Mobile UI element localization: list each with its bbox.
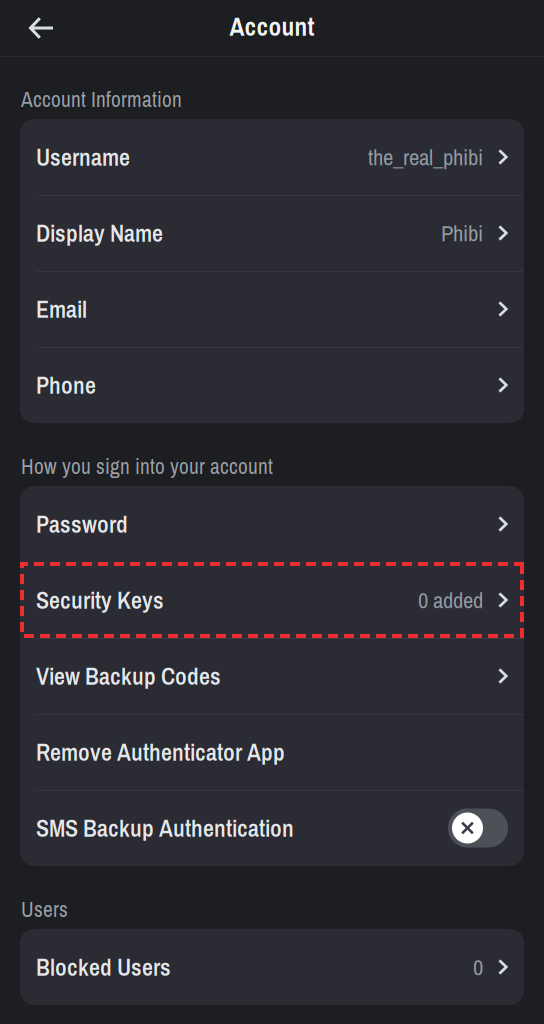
button[interactable]: Display Name <box>20 195 524 271</box>
staticText: Users <box>21 895 68 924</box>
button[interactable]: Security Keys <box>20 562 524 638</box>
button[interactable]: SMS Backup Authentication <box>20 790 524 866</box>
button[interactable]: Remove Authenticator App <box>20 714 524 790</box>
button[interactable]: View Backup Codes <box>20 638 524 714</box>
staticText: Email <box>36 293 87 325</box>
staticText: SMS Backup Authentication <box>36 812 294 844</box>
staticText: Phibi <box>441 218 483 248</box>
button[interactable]: Phone <box>20 347 524 423</box>
button[interactable]: Username <box>20 119 524 195</box>
staticText: Password <box>36 508 128 540</box>
staticText: How you sign into your account <box>21 452 273 481</box>
staticText: Username <box>36 141 130 173</box>
staticText: Security Keys <box>36 584 164 616</box>
staticText: the_real_phibi <box>368 142 483 172</box>
staticText: Blocked Users <box>36 951 171 983</box>
button[interactable]: Password <box>20 486 524 562</box>
staticText: 0 added <box>418 585 483 615</box>
button[interactable]: Blocked Users <box>20 929 524 1005</box>
button[interactable]: Back <box>0 0 70 56</box>
staticText: Phone <box>36 369 96 401</box>
button[interactable]: Email <box>20 271 524 347</box>
staticText: 0 <box>473 952 483 982</box>
staticText: View Backup Codes <box>36 660 221 692</box>
staticText: Account Information <box>21 85 182 114</box>
staticText: Remove Authenticator App <box>36 736 285 768</box>
staticText: Account <box>229 9 314 43</box>
staticText: Display Name <box>36 217 163 249</box>
